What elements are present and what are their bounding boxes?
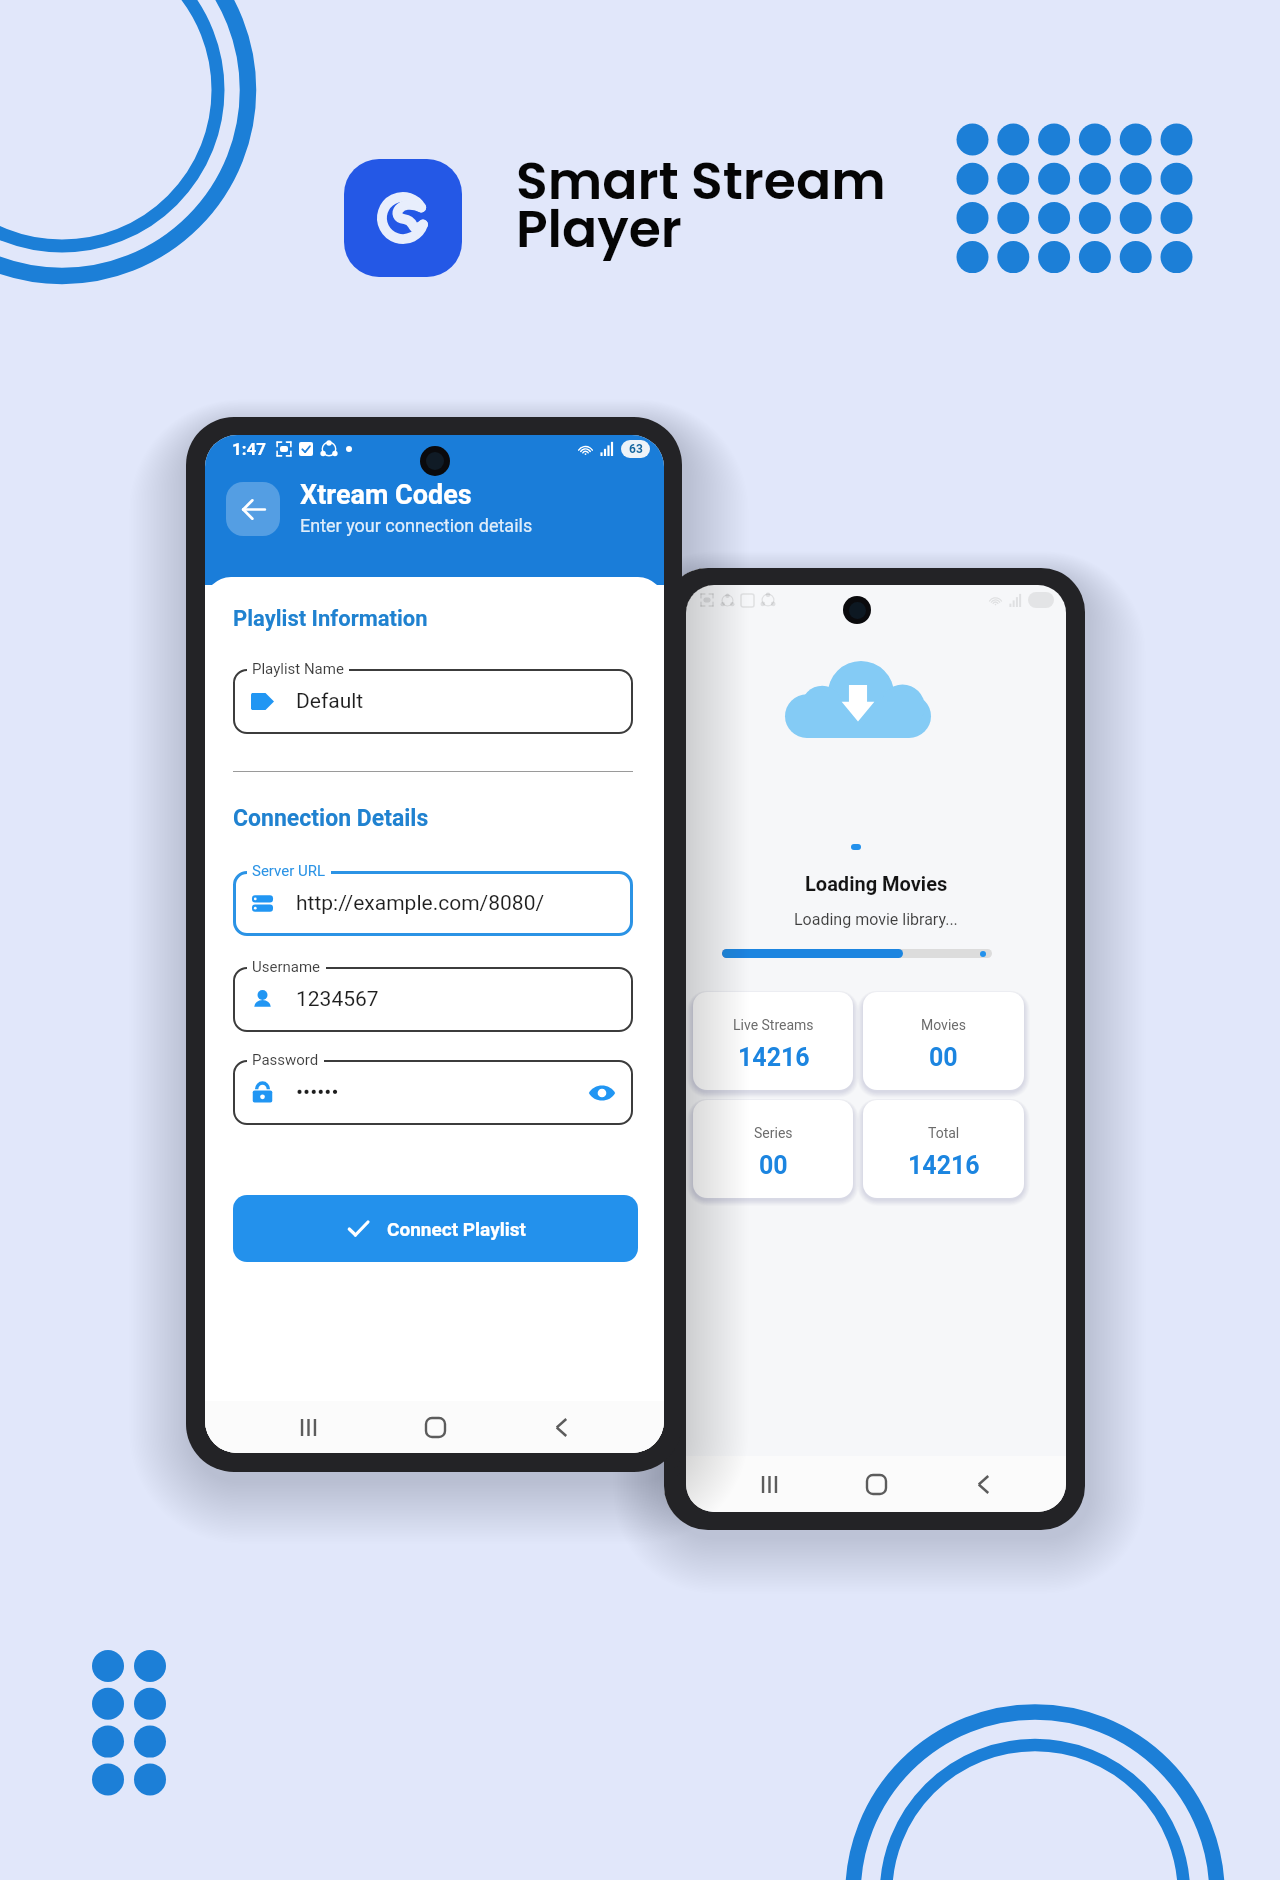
button[interactable]: Series xyxy=(693,1100,853,1198)
staticText: 1234567 xyxy=(296,987,379,1012)
staticText: Playlist Information xyxy=(233,606,428,632)
button[interactable]: Recent apps xyxy=(745,1460,793,1508)
staticText: Player xyxy=(516,192,682,265)
staticText: Playlist Name xyxy=(252,660,344,678)
staticText: 14216 xyxy=(738,1043,810,1072)
staticText: Default xyxy=(296,689,364,714)
button[interactable]: Smart Stream Player app icon xyxy=(344,159,462,277)
button[interactable]: Home xyxy=(411,1403,459,1451)
staticText: Username xyxy=(252,958,321,976)
staticText: http://example.com/8080/ xyxy=(296,891,545,916)
button[interactable]: Back xyxy=(226,482,280,536)
button[interactable]: Movies xyxy=(863,992,1024,1090)
staticText: Loading movie library... xyxy=(794,910,958,929)
button[interactable]: Home xyxy=(852,1460,900,1508)
staticText: Connect Playlist xyxy=(387,1218,526,1240)
staticText: 00 xyxy=(759,1151,788,1180)
staticText: 14216 xyxy=(908,1151,980,1180)
staticText: Loading Movies xyxy=(805,872,948,895)
button[interactable]: Recent apps xyxy=(284,1403,332,1451)
staticText: 1:47 xyxy=(232,439,267,459)
staticText: Smart Stream xyxy=(516,144,886,217)
staticText: 00 xyxy=(929,1043,958,1072)
button[interactable]: Back xyxy=(537,1403,585,1451)
button[interactable]: Live Streams xyxy=(693,992,853,1090)
staticText: 63 xyxy=(629,442,643,456)
staticText: Live Streams xyxy=(733,1017,814,1033)
staticText: Total xyxy=(928,1125,960,1141)
staticText: Xtream Codes xyxy=(300,479,472,511)
staticText: Movies xyxy=(921,1017,966,1033)
button[interactable]: Back xyxy=(959,1460,1007,1508)
staticText: Series xyxy=(754,1125,793,1141)
staticText: Server URL xyxy=(252,862,326,880)
button[interactable]: Total xyxy=(863,1100,1024,1198)
staticText: Connection Details xyxy=(233,805,429,832)
button[interactable]: Show password xyxy=(585,1076,619,1110)
staticText: Password xyxy=(252,1051,319,1069)
button[interactable]: Connect Playlist xyxy=(233,1195,638,1262)
staticText: •••••• xyxy=(296,1080,339,1105)
staticText: Enter your connection details xyxy=(300,515,533,536)
